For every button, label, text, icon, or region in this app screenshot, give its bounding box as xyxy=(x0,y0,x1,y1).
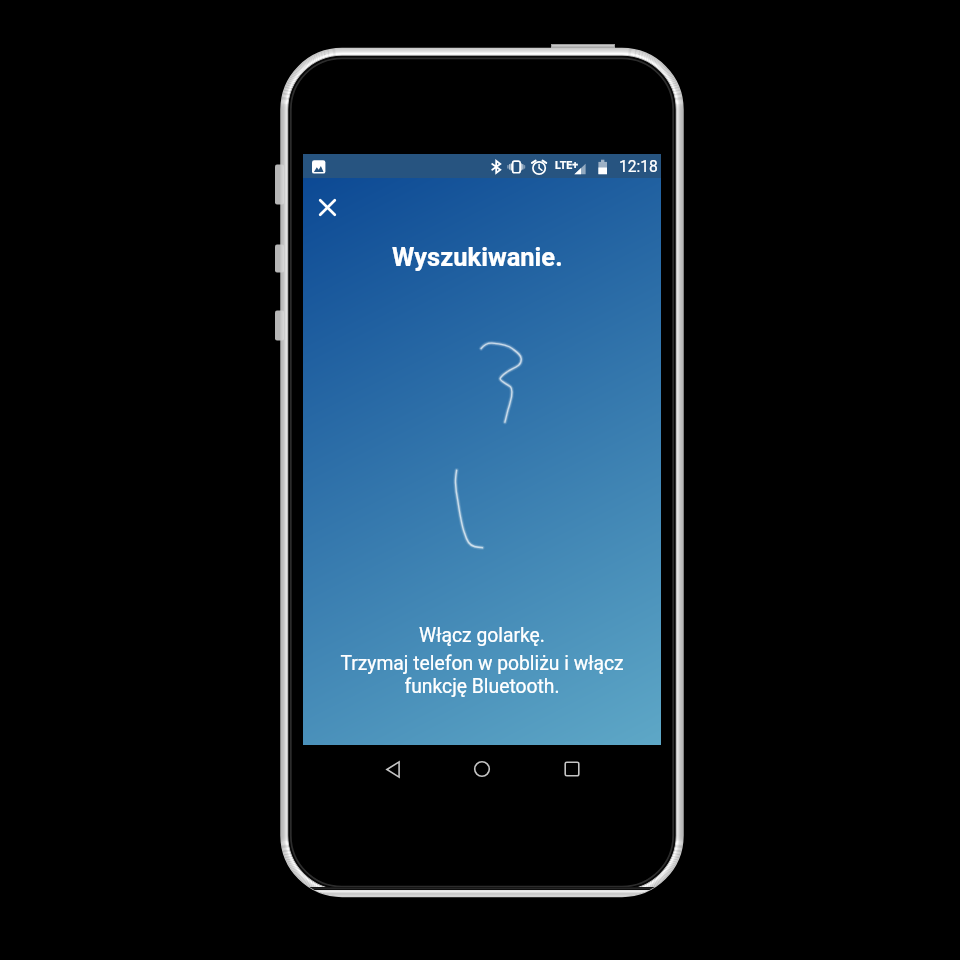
button[interactable]: Close xyxy=(306,186,348,228)
button[interactable]: Home xyxy=(460,745,504,793)
staticText: Wyszukiwanie. xyxy=(392,242,563,272)
button[interactable]: Recent apps xyxy=(550,745,594,793)
button[interactable]: Back xyxy=(371,745,415,793)
staticText: 12:18 xyxy=(619,158,658,176)
staticText: Trzymaj telefon w pobliżu i włącz funkcj… xyxy=(303,652,661,698)
staticText: LTE+ xyxy=(555,159,579,172)
staticText: Włącz golarkę. xyxy=(419,624,545,647)
